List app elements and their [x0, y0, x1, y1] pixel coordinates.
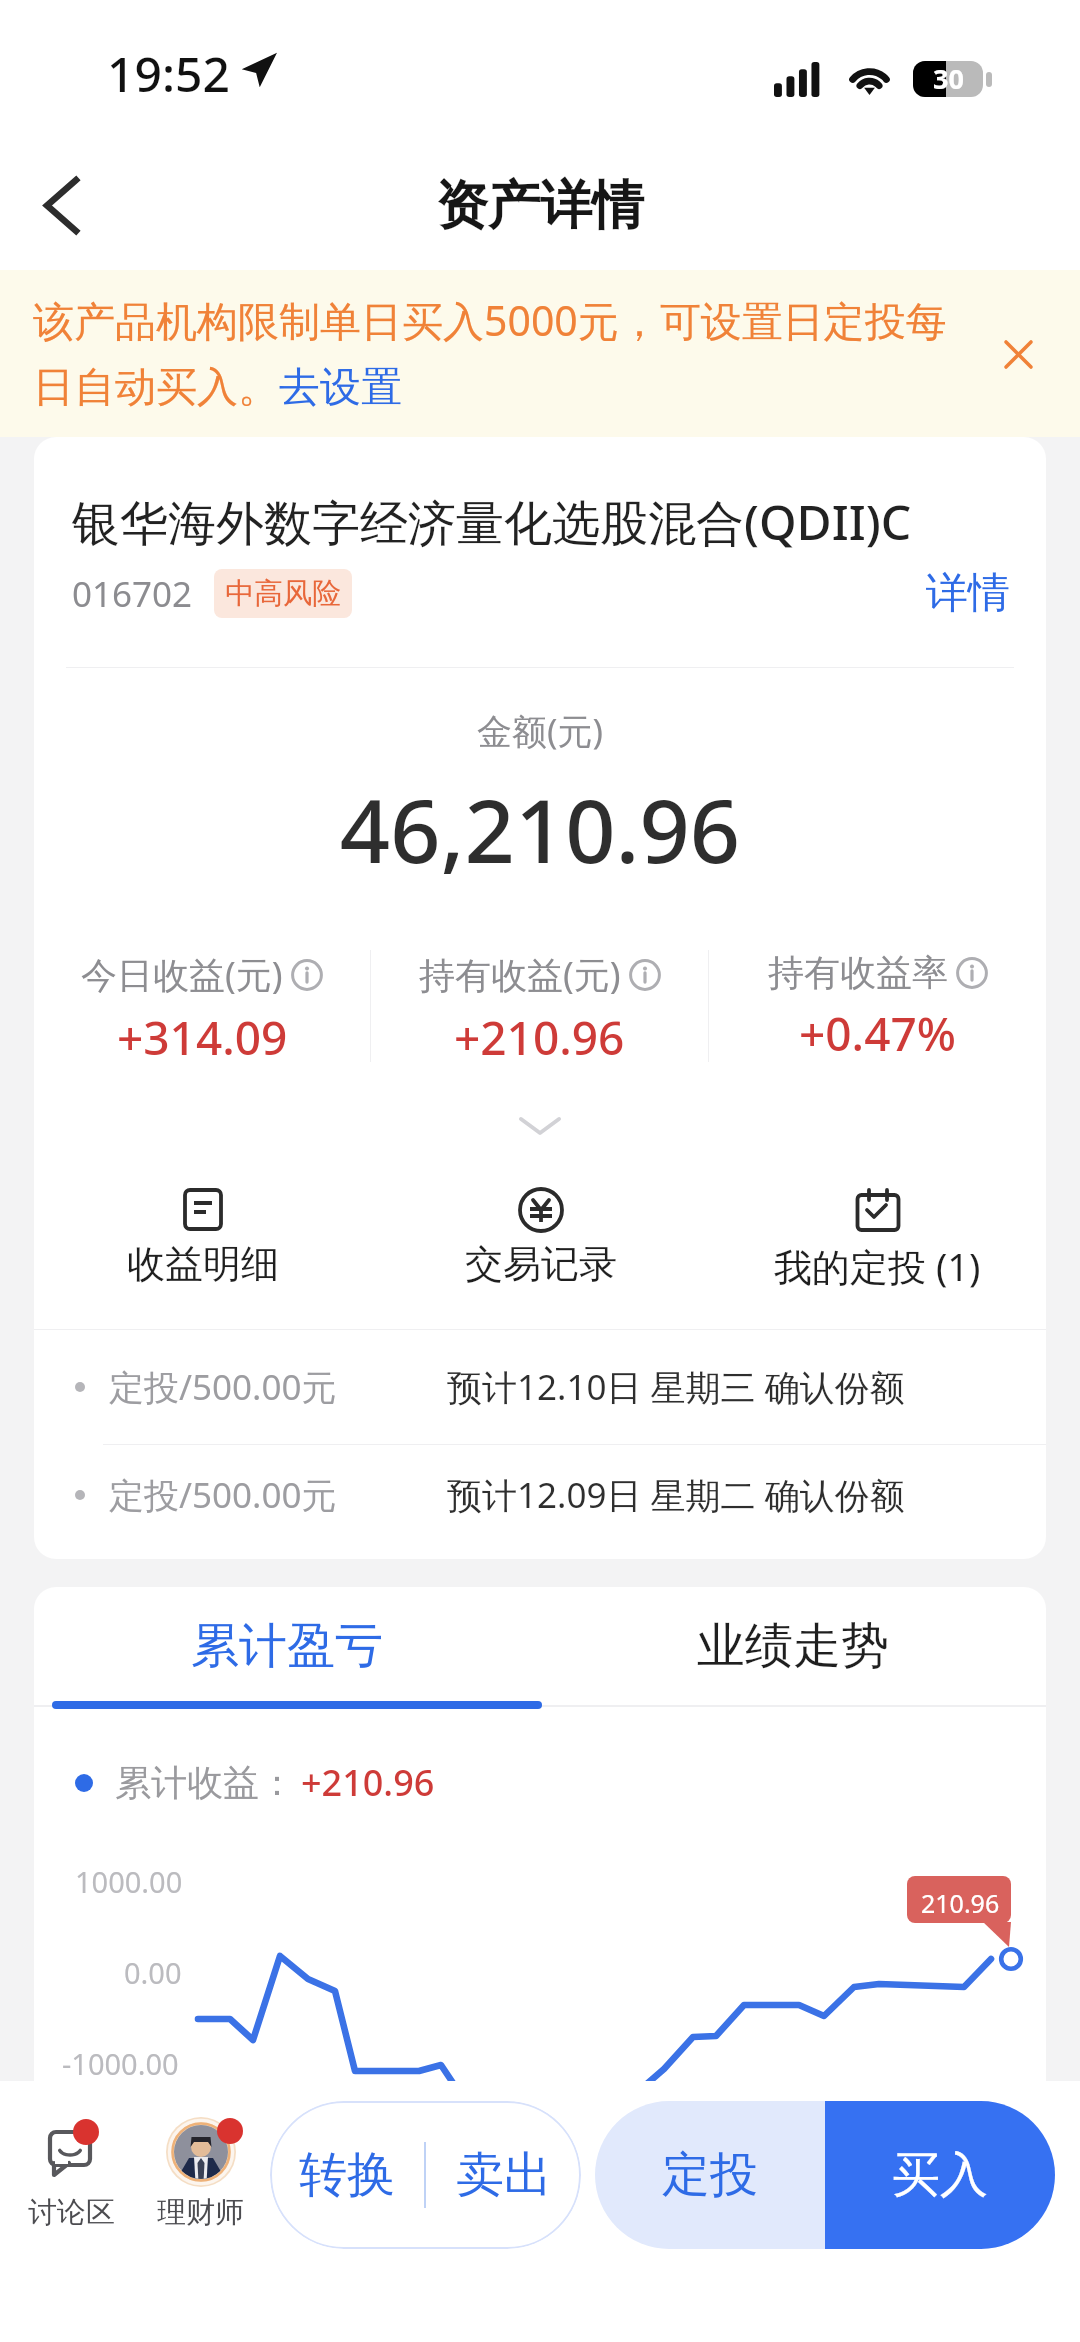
staticText: 收益明细 — [127, 1240, 279, 1288]
staticText: 0.00 — [124, 1953, 182, 1992]
staticText: 今日收益(元) — [81, 950, 283, 999]
button[interactable]: Close — [982, 318, 1054, 390]
button[interactable]: 理财师 — [143, 2113, 259, 2273]
staticText: 交易记录 — [465, 1240, 617, 1288]
staticText: -1000.00 — [62, 2044, 179, 2083]
staticText: 累计盈亏 — [191, 1616, 383, 1676]
staticText: 定投/500.00元 — [109, 1471, 337, 1519]
staticText: 预计12.09日 星期二 确认份额 — [447, 1471, 905, 1519]
staticText: 中高风险 — [225, 575, 341, 612]
staticText: 定投/500.00元 — [109, 1363, 337, 1411]
staticText: +0.47% — [799, 1002, 956, 1065]
staticText: 19:52 — [107, 41, 230, 106]
staticText: 银华海外数字经济量化选股混合(QDII)C — [72, 489, 912, 555]
staticText: +210.96 — [454, 1006, 625, 1069]
button[interactable]: 定投 — [595, 2101, 825, 2249]
staticText: 卖出 — [456, 2145, 552, 2205]
staticText: 详情 — [926, 567, 1010, 620]
staticText: 30 — [933, 61, 964, 96]
staticText: 016702 — [72, 570, 193, 618]
button[interactable]: 今日收益(元) — [34, 950, 370, 1069]
staticText: 去设置 — [279, 362, 402, 414]
staticText: 1000.00 — [75, 1862, 183, 1901]
staticText: 210.96 — [921, 1886, 1000, 1920]
staticText: 理财师 — [157, 2194, 244, 2231]
staticText: 讨论区 — [28, 2194, 115, 2231]
staticText: 该产品机构限制单日买入5000元，可设置日定投每 — [33, 292, 947, 348]
staticText: 金额(元) — [34, 707, 1046, 755]
button[interactable]: 转换 — [270, 2101, 424, 2249]
staticText: +210.96 — [301, 1758, 435, 1807]
staticText: 46,210.96 — [34, 769, 1046, 889]
button[interactable]: 定投/500.00元 — [34, 1438, 1046, 1552]
staticText: 持有收益(元) — [419, 950, 621, 999]
staticText: 买入 — [892, 2145, 988, 2205]
button[interactable]: 我的定投 (1) — [709, 1188, 1046, 1292]
staticText: 累计收益： — [115, 1760, 295, 1805]
button[interactable]: 持有收益(元) — [371, 950, 708, 1069]
staticText: 预计12.10日 星期三 确认份额 — [447, 1363, 905, 1411]
staticText: +314.09 — [117, 1006, 288, 1069]
button[interactable]: 详情 — [926, 567, 1010, 620]
button[interactable]: 买入 — [825, 2101, 1055, 2249]
staticText: 日自动买入。 — [33, 362, 279, 414]
staticText: 资产详情 — [436, 173, 644, 239]
button[interactable]: 累计盈亏 — [34, 1587, 540, 1705]
button[interactable]: 定投/500.00元 — [34, 1330, 1046, 1444]
button[interactable]: 卖出 — [426, 2101, 581, 2249]
staticText: 转换 — [299, 2145, 395, 2205]
button[interactable]: 持有收益率 — [709, 950, 1046, 1065]
button[interactable]: 讨论区 — [14, 2113, 126, 2273]
button[interactable]: Back — [13, 157, 109, 253]
button[interactable]: 交易记录 — [372, 1188, 709, 1288]
staticText: 业绩走势 — [697, 1616, 889, 1676]
button[interactable]: 收益明细 — [34, 1188, 372, 1288]
staticText: 持有收益率 — [768, 950, 948, 995]
staticText: 我的定投 (1) — [774, 1240, 981, 1292]
staticText: 定投 — [662, 2145, 758, 2205]
button[interactable]: 业绩走势 — [540, 1587, 1046, 1705]
